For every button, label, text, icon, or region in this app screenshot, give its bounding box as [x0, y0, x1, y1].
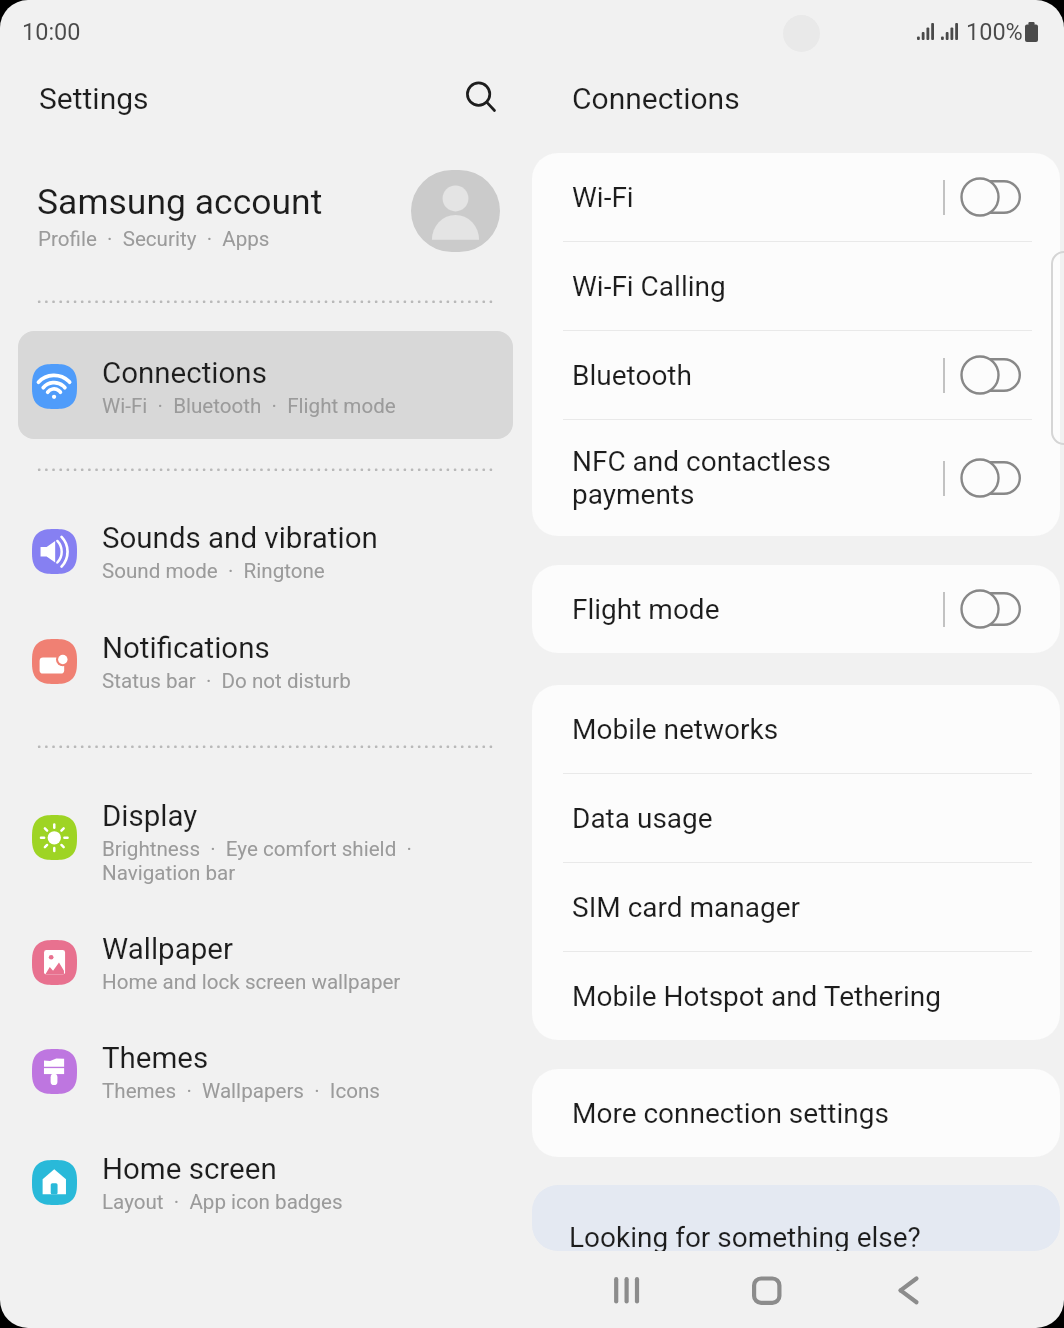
- button[interactable]: Home screen: [18, 1149, 513, 1233]
- staticText: Mobile Hotspot and Tethering: [572, 980, 941, 1013]
- staticText: Themes: [102, 1041, 209, 1076]
- staticText: Home screen: [102, 1152, 277, 1187]
- staticText: NFC and contactless payments: [572, 445, 943, 511]
- button[interactable]: Mobile Hotspot and Tethering: [532, 952, 1060, 1040]
- staticText: Status bar · Do not disturb: [102, 669, 351, 693]
- button[interactable]: Recents: [603, 1267, 651, 1315]
- staticText: Notifications: [102, 631, 270, 666]
- staticText: Flight mode: [572, 593, 943, 626]
- button[interactable]: Wi-Fi: [532, 153, 1060, 241]
- button[interactable]: Wi-Fi Calling: [532, 242, 1060, 330]
- staticText: Looking for something else?: [569, 1221, 921, 1251]
- staticText: Profile · Security · Apps: [38, 227, 270, 251]
- button[interactable]: Notifications: [18, 628, 513, 712]
- staticText: SIM card manager: [572, 891, 801, 924]
- staticText: Bluetooth: [572, 359, 943, 392]
- button[interactable]: Wallpaper: [18, 929, 513, 1013]
- staticText: Connections: [102, 356, 267, 391]
- button[interactable]: Mobile networks: [532, 685, 1060, 773]
- button[interactable]: NFC and contactless payments: [532, 420, 1060, 536]
- staticText: 100%: [966, 18, 1023, 46]
- staticText: Mobile networks: [572, 713, 779, 746]
- button[interactable]: Samsung account: [0, 170, 532, 252]
- staticText: Samsung account: [37, 181, 323, 223]
- button[interactable]: Toggle: [963, 461, 1021, 495]
- staticText: 10:00: [22, 18, 81, 46]
- button[interactable]: More connection settings: [532, 1069, 1060, 1157]
- button[interactable]: Looking for something else?: [532, 1185, 1060, 1251]
- button[interactable]: Data usage: [532, 774, 1060, 862]
- staticText: Wallpaper: [102, 932, 233, 967]
- button[interactable]: Connections: [18, 353, 513, 437]
- staticText: Settings: [39, 81, 149, 116]
- staticText: Wi-Fi · Bluetooth · Flight mode: [102, 394, 396, 418]
- button[interactable]: Toggle: [963, 592, 1021, 626]
- button[interactable]: Themes: [18, 1038, 513, 1122]
- staticText: Sounds and vibration: [102, 521, 378, 556]
- staticText: More connection settings: [572, 1097, 889, 1130]
- staticText: Wi-Fi Calling: [572, 270, 726, 303]
- staticText: Sound mode · Ringtone: [102, 559, 325, 583]
- button[interactable]: Home: [743, 1267, 791, 1315]
- staticText: Home and lock screen wallpaper: [102, 970, 401, 994]
- button[interactable]: Search: [456, 70, 504, 114]
- button[interactable]: SIM card manager: [532, 863, 1060, 951]
- button[interactable]: Toggle: [963, 180, 1021, 214]
- staticText: Layout · App icon badges: [102, 1190, 343, 1214]
- staticText: Themes · Wallpapers · Icons: [102, 1079, 380, 1103]
- button[interactable]: Display: [18, 796, 513, 904]
- staticText: Brightness · Eye comfort shield · Naviga…: [102, 837, 412, 885]
- staticText: Display: [102, 799, 198, 834]
- button[interactable]: Flight mode: [532, 565, 1060, 653]
- button[interactable]: [18, 331, 513, 439]
- button[interactable]: Back: [885, 1267, 933, 1315]
- button[interactable]: Sounds and vibration: [18, 518, 513, 602]
- staticText: Data usage: [572, 802, 713, 835]
- button[interactable]: Toggle: [963, 358, 1021, 392]
- staticText: Connections: [572, 81, 740, 116]
- staticText: Wi-Fi: [572, 181, 943, 214]
- button[interactable]: Bluetooth: [532, 331, 1060, 419]
